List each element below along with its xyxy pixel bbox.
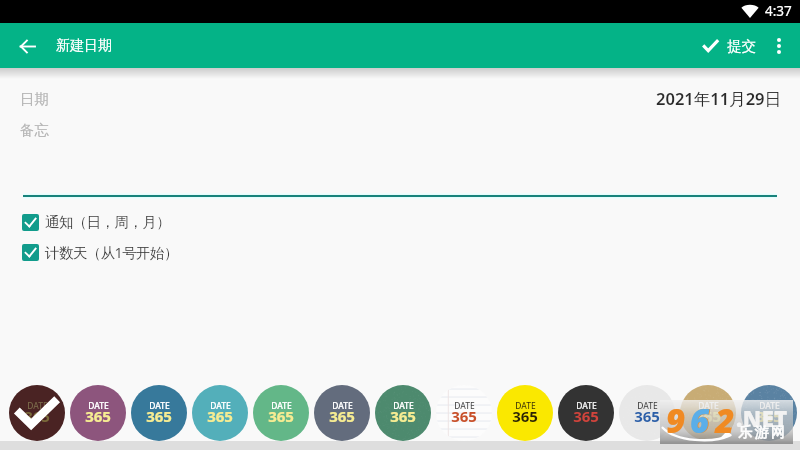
staticText: 备忘 [20, 121, 49, 139]
button[interactable]: Theme [314, 385, 370, 441]
button[interactable]: Theme [70, 385, 126, 441]
staticText: 365 [207, 406, 233, 426]
staticText: DATE [393, 400, 414, 412]
staticText: 365 [268, 406, 294, 426]
button[interactable]: Theme [253, 385, 309, 441]
staticText: .NET [736, 403, 788, 433]
button[interactable]: More options [763, 30, 795, 62]
staticText: DATE [27, 400, 48, 412]
staticText: DATE [637, 400, 658, 412]
button[interactable]: 日期 [0, 87, 800, 110]
staticText: DATE [149, 400, 170, 412]
staticText: 365 [146, 406, 172, 426]
button[interactable]: 通知（日，周，月） [0, 213, 800, 231]
staticText: 乐游网 [738, 424, 788, 442]
staticText: 提交 [727, 37, 756, 55]
staticText: 日期 [20, 90, 49, 108]
button[interactable]: Theme [741, 385, 797, 441]
staticText: DATE [271, 400, 292, 412]
button[interactable]: Back [15, 34, 39, 58]
staticText: DATE [332, 400, 353, 412]
button[interactable]: Theme [497, 385, 553, 441]
button[interactable]: Theme [558, 385, 614, 441]
staticText: 365 [85, 406, 111, 426]
staticText: DATE [698, 400, 719, 412]
staticText: 计数天（从1号开始） [45, 242, 178, 262]
staticText: 2021年11月29日 [656, 87, 782, 110]
staticText: 通知（日，周，月） [45, 213, 171, 231]
staticText: 365 [756, 406, 782, 426]
button[interactable]: Theme [131, 385, 187, 441]
button[interactable]: Theme [192, 385, 248, 441]
staticText: DATE [515, 400, 536, 412]
button[interactable]: 计数天（从1号开始） [0, 242, 800, 262]
staticText: 365 [24, 406, 50, 426]
button[interactable]: Theme [9, 385, 65, 441]
staticText: 365 [390, 406, 416, 426]
staticText: 962 [666, 398, 740, 442]
staticText: 4:37 [765, 2, 792, 20]
staticText: 365 [451, 406, 477, 426]
button[interactable]: Theme [680, 385, 736, 441]
staticText: 6 [690, 398, 715, 442]
staticText: 365 [573, 406, 599, 426]
staticText: 365 [695, 406, 721, 426]
staticText: DATE [454, 400, 475, 412]
button[interactable]: Theme [436, 385, 492, 441]
button[interactable]: Theme [619, 385, 675, 441]
staticText: 365 [634, 406, 660, 426]
staticText: DATE [576, 400, 597, 412]
staticText: 新建日期 [56, 37, 112, 55]
staticText: DATE [88, 400, 109, 412]
staticText: DATE [759, 400, 780, 412]
staticText: 365 [512, 406, 538, 426]
button[interactable]: 提交 [692, 30, 763, 62]
staticText: 365 [329, 406, 355, 426]
button[interactable]: Theme [375, 385, 431, 441]
staticText: DATE [210, 400, 231, 412]
